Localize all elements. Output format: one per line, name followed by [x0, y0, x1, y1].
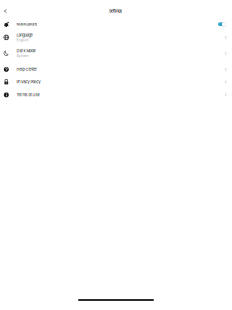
staticText: System — [16, 54, 28, 58]
staticText: Terms of Use — [16, 93, 39, 97]
staticText: Notifications — [16, 22, 37, 27]
button[interactable]: Terms of Use — [0, 89, 232, 101]
staticText: Help Center — [16, 67, 36, 72]
staticText: Language — [16, 33, 32, 37]
button[interactable]: Language — [0, 31, 232, 44]
button[interactable]: Dark Mode — [0, 47, 232, 60]
staticText: Dark Mode — [16, 49, 35, 53]
button[interactable]: Back — [1, 7, 10, 16]
button[interactable]: Notifications — [0, 18, 232, 31]
staticText: Settings — [109, 9, 122, 13]
staticText: Privacy Policy — [16, 80, 40, 84]
button[interactable]: Privacy Policy — [0, 76, 232, 88]
button[interactable]: Help Center — [0, 63, 232, 75]
staticText: English — [16, 38, 28, 42]
